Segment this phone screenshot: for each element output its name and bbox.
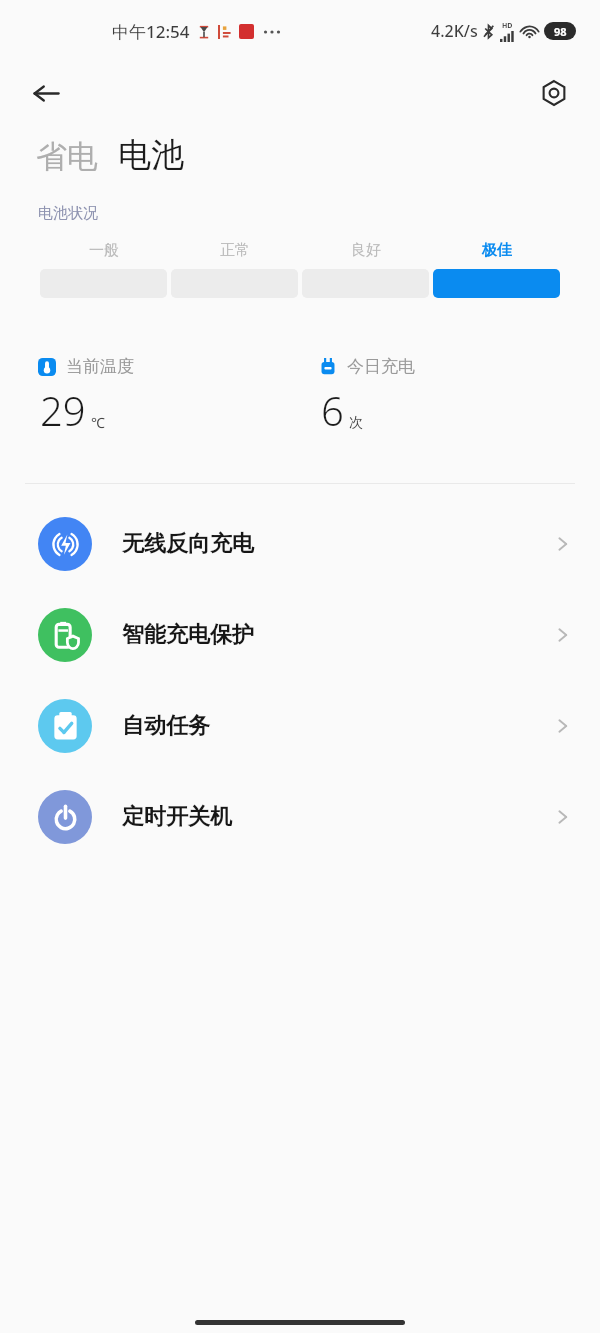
staticText: 定时开关机 xyxy=(122,803,232,831)
staticText: 当前温度 xyxy=(66,356,134,377)
button[interactable]: 电池 xyxy=(118,134,184,176)
button[interactable]: 定时开关机 xyxy=(0,771,600,862)
staticText: 智能充电保护 xyxy=(122,621,254,649)
staticText: 省电 xyxy=(36,137,98,176)
button[interactable]: Back xyxy=(24,71,68,115)
button[interactable]: 省电 xyxy=(36,137,98,176)
staticText: 极佳 xyxy=(482,241,512,260)
staticText: 今日充电 xyxy=(347,356,415,377)
staticText: 98 xyxy=(554,24,567,39)
staticText: 29 xyxy=(40,383,86,437)
staticText: HD xyxy=(502,21,513,31)
button[interactable]: Settings xyxy=(532,71,576,115)
staticText: 电池 xyxy=(118,134,184,176)
button[interactable]: 智能充电保护 xyxy=(0,589,600,680)
staticText: 良好 xyxy=(351,241,381,260)
button[interactable]: 无线反向充电 xyxy=(0,498,600,589)
staticText: 4.2K/s xyxy=(431,20,478,42)
staticText: 自动任务 xyxy=(122,712,210,740)
staticText: 一般 xyxy=(89,241,119,260)
staticText: 无线反向充电 xyxy=(122,530,254,558)
button[interactable]: 自动任务 xyxy=(0,680,600,771)
staticText: 中午12:54 xyxy=(112,20,190,43)
staticText: 次 xyxy=(349,414,363,432)
staticText: ℃ xyxy=(91,413,105,432)
button[interactable] xyxy=(433,269,560,298)
staticText: 电池状况 xyxy=(38,204,98,223)
staticText: 6 xyxy=(321,383,344,437)
staticText: 正常 xyxy=(220,241,250,260)
